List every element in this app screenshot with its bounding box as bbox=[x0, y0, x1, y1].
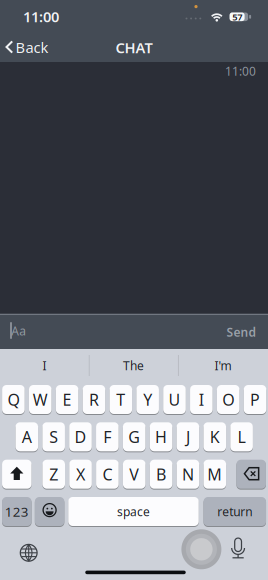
staticText: Y bbox=[143, 389, 152, 410]
staticText: Z bbox=[49, 464, 58, 485]
button[interactable]: The bbox=[89, 351, 177, 379]
staticText: T bbox=[116, 389, 125, 410]
button[interactable]: Back bbox=[0, 32, 50, 62]
staticText: V bbox=[129, 464, 139, 485]
button[interactable]: E bbox=[56, 384, 78, 414]
staticText: 57 bbox=[232, 11, 242, 23]
staticText: I bbox=[199, 389, 204, 410]
staticText: return bbox=[217, 503, 252, 519]
staticText: L bbox=[238, 426, 246, 447]
staticText: G bbox=[128, 426, 140, 447]
button[interactable]: B bbox=[150, 459, 172, 489]
staticText: CHAT bbox=[115, 38, 152, 57]
button[interactable]: R bbox=[83, 384, 105, 414]
staticText: F bbox=[103, 426, 111, 447]
button[interactable]: Y bbox=[136, 384, 159, 414]
staticText: I'm bbox=[214, 357, 231, 373]
staticText: 123 bbox=[5, 503, 29, 520]
staticText: Send bbox=[226, 324, 256, 340]
staticText: 11:00 bbox=[225, 63, 256, 79]
button[interactable]: Q bbox=[2, 384, 25, 414]
button[interactable]: L bbox=[230, 422, 253, 452]
staticText: Q bbox=[7, 389, 19, 410]
staticText: R bbox=[89, 389, 99, 410]
button[interactable]: Z bbox=[42, 459, 65, 489]
staticText: The bbox=[123, 357, 144, 373]
staticText: S bbox=[49, 426, 58, 447]
button[interactable]: T bbox=[109, 384, 132, 414]
button[interactable]: O bbox=[217, 384, 239, 414]
button[interactable]: I bbox=[190, 384, 213, 414]
staticText: X bbox=[76, 464, 85, 485]
button[interactable]: U bbox=[163, 384, 186, 414]
button[interactable]: I bbox=[0, 351, 88, 379]
button[interactable]: P bbox=[244, 384, 266, 414]
staticText: K bbox=[210, 426, 220, 447]
button[interactable]: J bbox=[177, 422, 199, 452]
staticText: 11:00 bbox=[23, 7, 59, 26]
staticText: B bbox=[156, 464, 166, 485]
staticText: E bbox=[63, 389, 72, 410]
button[interactable]: return bbox=[204, 496, 266, 526]
button[interactable] bbox=[14, 538, 44, 568]
staticText: N bbox=[182, 464, 194, 485]
staticText: M bbox=[207, 464, 222, 485]
staticText: A bbox=[22, 426, 32, 447]
button[interactable]: W bbox=[29, 384, 51, 414]
button[interactable]: G bbox=[123, 422, 145, 452]
staticText: Aa bbox=[11, 323, 26, 339]
staticText: I bbox=[42, 357, 46, 373]
button[interactable] bbox=[35, 496, 64, 526]
button[interactable]: F bbox=[96, 422, 119, 452]
button[interactable]: H bbox=[150, 422, 172, 452]
button[interactable] bbox=[2, 459, 32, 489]
staticText: J bbox=[186, 426, 190, 447]
staticText: H bbox=[155, 426, 167, 447]
button[interactable]: D bbox=[69, 422, 92, 452]
button[interactable]: N bbox=[177, 459, 199, 489]
button[interactable] bbox=[236, 459, 266, 489]
staticText: O bbox=[222, 389, 234, 410]
button[interactable]: space bbox=[68, 496, 199, 526]
button[interactable]: 123 bbox=[2, 496, 32, 526]
button[interactable]: A bbox=[15, 422, 38, 452]
staticText: Back bbox=[15, 37, 48, 57]
button[interactable]: Aa bbox=[0, 314, 210, 347]
button[interactable]: S bbox=[42, 422, 65, 452]
button[interactable]: V bbox=[123, 459, 146, 489]
staticText: W bbox=[33, 389, 48, 410]
button[interactable]: I'm bbox=[179, 351, 267, 379]
staticText: P bbox=[250, 389, 260, 410]
staticText: U bbox=[168, 389, 180, 410]
staticText: space bbox=[117, 503, 150, 519]
button[interactable]: K bbox=[203, 422, 226, 452]
button[interactable] bbox=[223, 534, 253, 568]
staticText: C bbox=[102, 464, 112, 485]
staticText: D bbox=[74, 426, 86, 447]
button[interactable]: C bbox=[96, 459, 119, 489]
button[interactable]: X bbox=[69, 459, 92, 489]
button[interactable]: M bbox=[203, 459, 226, 489]
button[interactable]: Send bbox=[221, 319, 261, 345]
